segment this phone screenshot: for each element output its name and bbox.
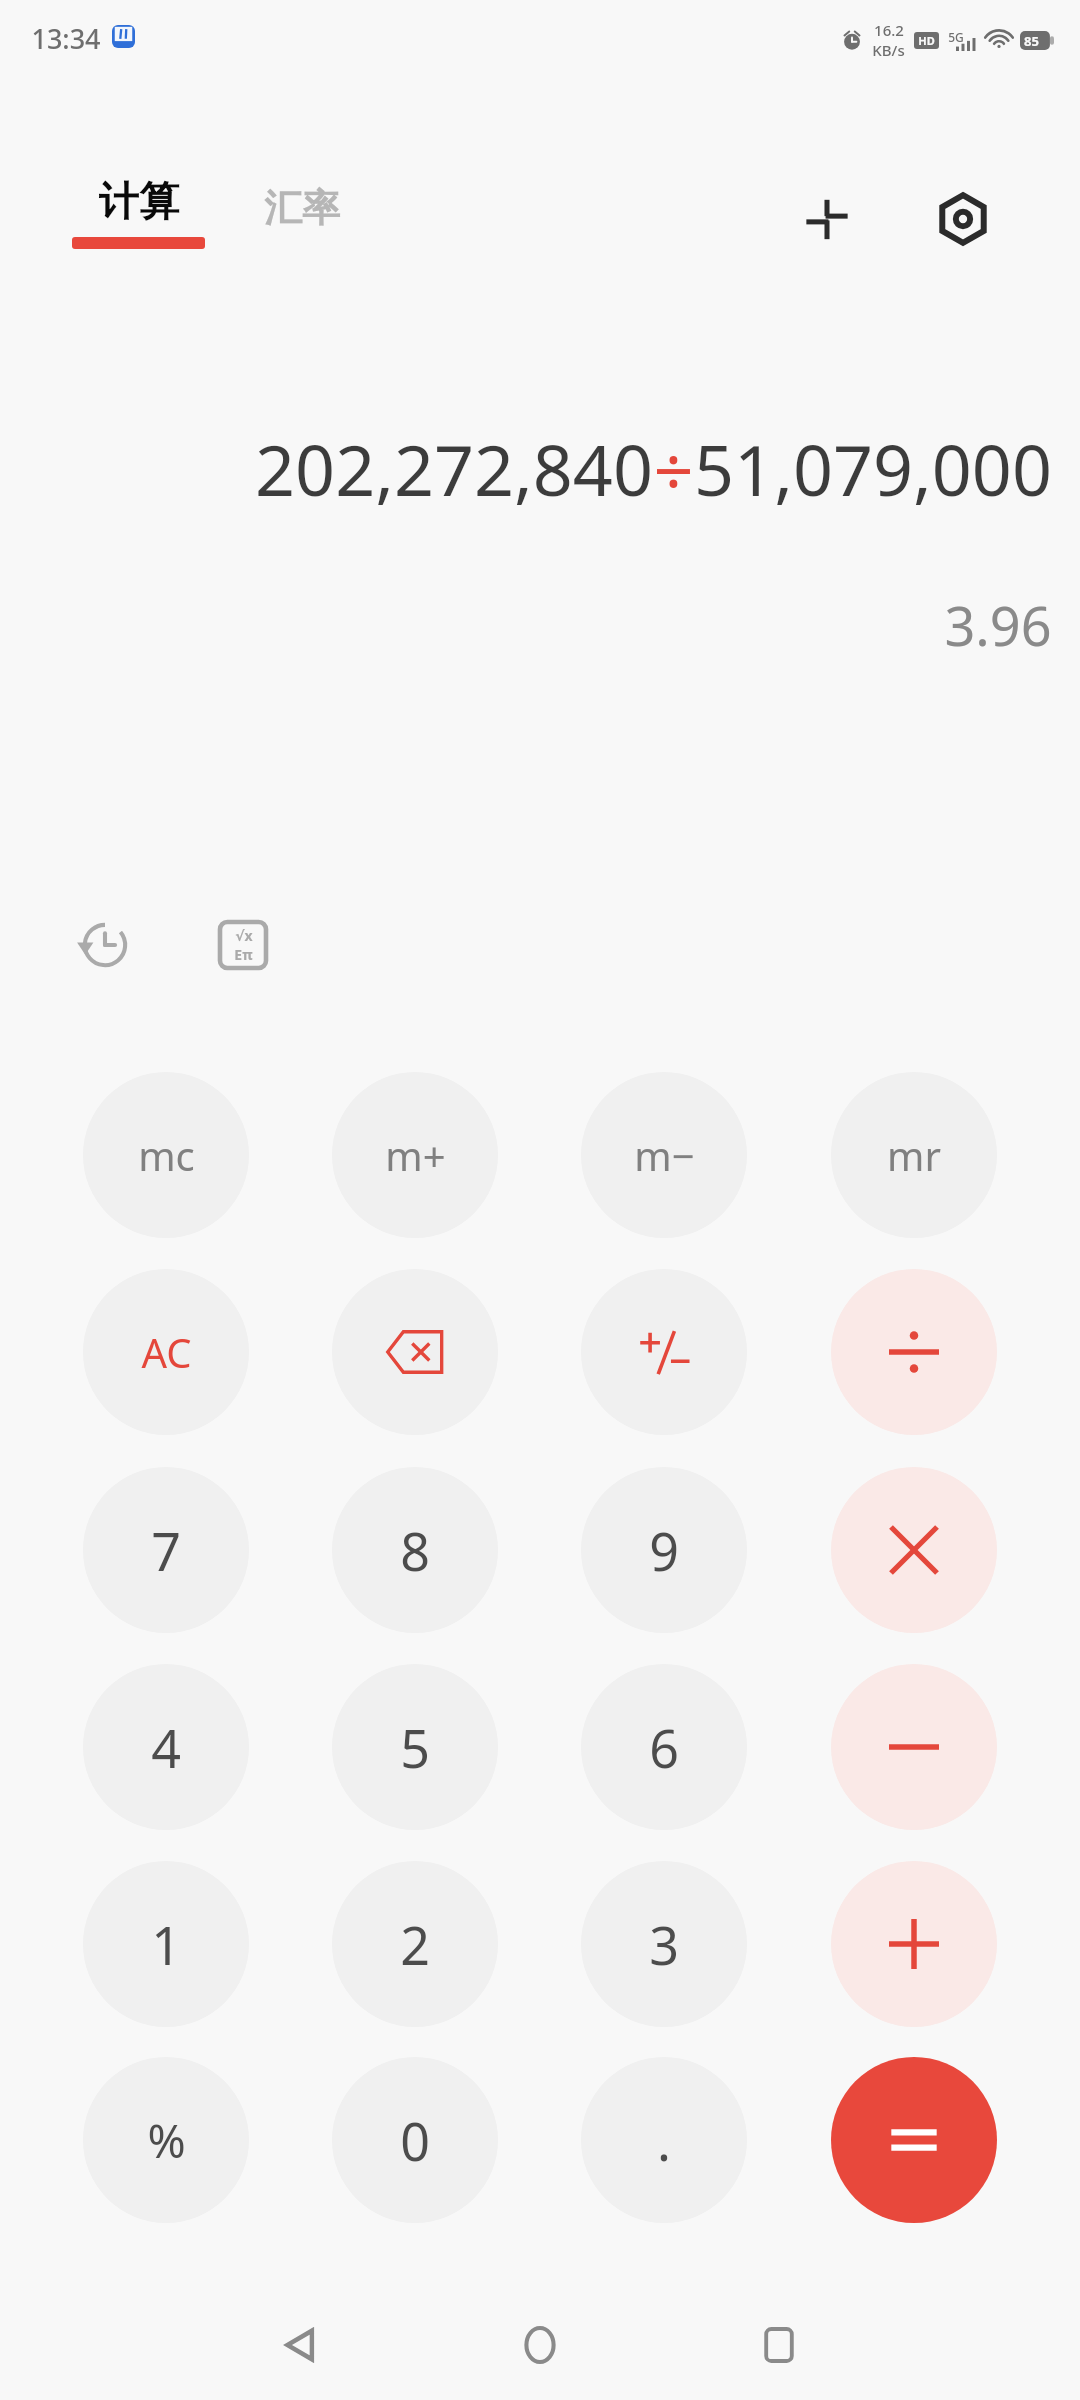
button[interactable]: Settings [918, 174, 1008, 264]
button[interactable]: Home [485, 2290, 595, 2400]
staticText: 6 [649, 1712, 679, 1783]
button[interactable] [831, 1467, 997, 1633]
button[interactable]: 计算 [60, 170, 217, 255]
staticText: √x [235, 926, 253, 945]
button[interactable]: m+ [332, 1072, 498, 1238]
button[interactable]: Scientific [198, 900, 288, 990]
staticText: 51,079,000 [694, 421, 1052, 516]
staticText: 3 [649, 1909, 679, 1980]
staticText: m− [634, 1128, 695, 1182]
button[interactable]: mr [831, 1072, 997, 1238]
staticText: mc [138, 1128, 195, 1182]
staticText: HD [918, 33, 935, 48]
button[interactable]: 7 [83, 1467, 249, 1633]
staticText: 计算 [99, 176, 179, 226]
staticText: mr [887, 1128, 941, 1182]
button[interactable]: 6 [581, 1664, 747, 1830]
button[interactable]: 5 [332, 1664, 498, 1830]
button[interactable]: AC [83, 1269, 249, 1435]
staticText: % [147, 2109, 186, 2172]
button[interactable]: 9 [581, 1467, 747, 1633]
staticText: AC [141, 1325, 192, 1379]
staticText: 2 [400, 1909, 430, 1980]
staticText: m+ [385, 1128, 446, 1182]
button[interactable] [581, 1269, 747, 1435]
button[interactable]: % [83, 2057, 249, 2223]
button[interactable] [831, 2057, 997, 2223]
staticText: 汇率 [264, 184, 340, 232]
staticText: . [657, 2105, 671, 2176]
staticText: 3.96 [944, 588, 1052, 662]
button[interactable]: mc [83, 1072, 249, 1238]
button[interactable]: 1 [83, 1861, 249, 2027]
button[interactable]: . [581, 2057, 747, 2223]
button[interactable]: 2 [332, 1861, 498, 2027]
staticText: 1 [151, 1909, 181, 1980]
button[interactable]: 汇率 [250, 176, 354, 240]
staticText: Eπ [234, 945, 253, 964]
staticText: 7 [151, 1515, 181, 1586]
staticText: KB/s [872, 40, 905, 60]
staticText: 8 [400, 1515, 430, 1586]
button[interactable] [831, 1269, 997, 1435]
button[interactable]: 3 [581, 1861, 747, 2027]
staticText: ÷ [653, 421, 694, 516]
button[interactable]: History [60, 900, 150, 990]
button[interactable] [831, 1664, 997, 1830]
staticText: 85 [1024, 32, 1039, 50]
button[interactable]: 8 [332, 1467, 498, 1633]
staticText: 5 [400, 1712, 430, 1783]
staticText: 4 [151, 1712, 181, 1783]
staticText: 16.2 [874, 20, 904, 40]
staticText: 5G [948, 29, 964, 45]
button[interactable] [831, 1861, 997, 2027]
button[interactable]: Back [246, 2290, 356, 2400]
staticText: 13:34 [31, 20, 101, 57]
staticText: 9 [649, 1515, 679, 1586]
button[interactable]: Collapse [782, 174, 872, 264]
button[interactable]: 0 [332, 2057, 498, 2223]
staticText: 0 [400, 2105, 430, 2176]
button[interactable]: Recents [724, 2290, 834, 2400]
button[interactable]: 4 [83, 1664, 249, 1830]
button[interactable]: Delete [332, 1269, 498, 1435]
staticText: 202,272,840 [255, 421, 653, 516]
button[interactable]: m− [581, 1072, 747, 1238]
